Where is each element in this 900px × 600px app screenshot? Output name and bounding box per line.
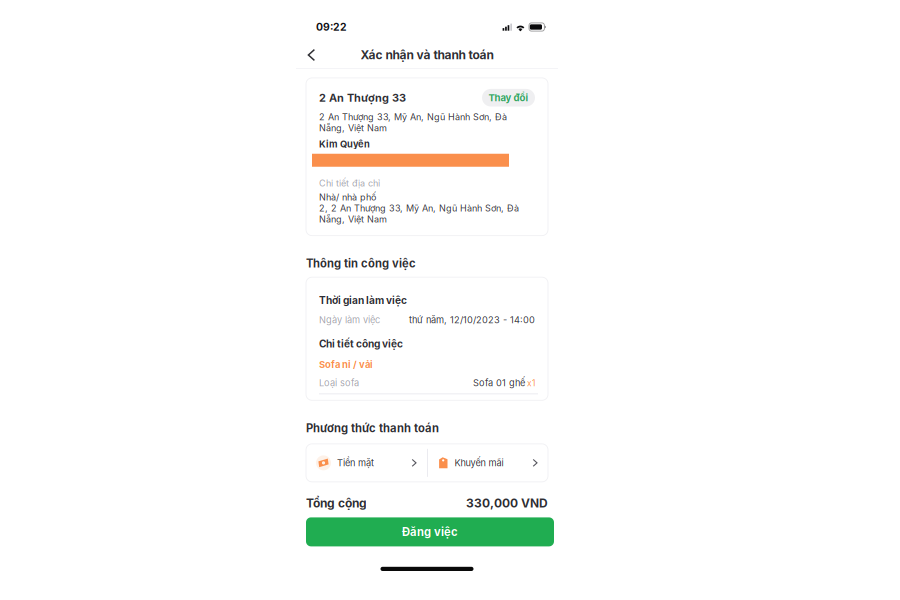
staticText: Thông tin công việc — [306, 257, 416, 270]
staticText: 2 An Thượng 33, Mỹ An, Ngũ Hành Sơn, Đà … — [319, 111, 507, 133]
staticText: Kim Quyên — [319, 138, 370, 150]
staticText: Khuyến mãi — [454, 457, 503, 468]
button[interactable]: Back — [298, 44, 324, 66]
staticText: thứ năm, 12/10/2023 - 14:00 — [409, 314, 535, 325]
staticText: 2, 2 An Thượng 33, Mỹ An, Ngũ Hành Sơn, … — [319, 203, 519, 225]
button[interactable]: Thay đổi — [482, 89, 535, 106]
staticText: Ngày làm việc — [319, 314, 380, 325]
staticText: Nhà/ nhà phố — [319, 192, 376, 203]
staticText: Phương thức thanh toán — [306, 421, 439, 435]
staticText: x1 — [525, 378, 535, 388]
staticText: Đăng việc — [402, 525, 458, 539]
staticText: 330,000 VND — [466, 496, 548, 510]
staticText: Chi tiết công việc — [319, 338, 403, 350]
staticText: Thời gian làm việc — [319, 294, 407, 306]
button[interactable]: Đăng việc — [306, 517, 554, 546]
staticText: Xác nhận và thanh toán — [360, 48, 493, 62]
staticText: 09:22 — [316, 21, 347, 33]
button[interactable]: Tiền mặt — [306, 444, 427, 482]
staticText: Tiền mặt — [337, 457, 374, 468]
button[interactable]: Khuyến mãi — [428, 444, 548, 482]
staticText: Chi tiết địa chỉ — [319, 178, 380, 189]
staticText: Tổng cộng — [306, 496, 367, 510]
staticText: Loại sofa — [319, 377, 359, 388]
staticText: Thay đổi — [488, 92, 528, 103]
staticText: Sofa nỉ / vải — [319, 359, 373, 370]
staticText: Sofa 01 ghế — [473, 377, 525, 388]
staticText: 2 An Thượng 33 — [319, 91, 406, 104]
